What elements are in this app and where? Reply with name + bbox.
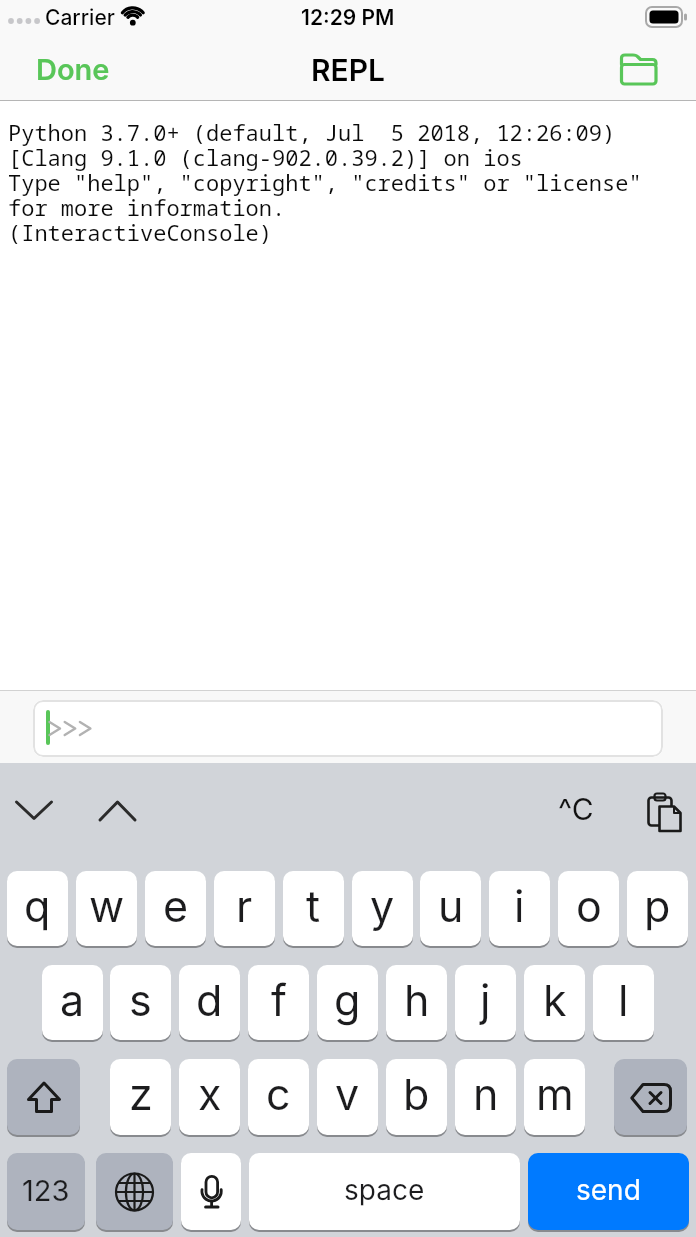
staticText: b: [403, 1068, 430, 1120]
button[interactable]: [96, 1153, 173, 1230]
button[interactable]: c: [248, 1059, 309, 1135]
staticText: z: [129, 1068, 153, 1120]
staticText: w: [89, 880, 125, 932]
button[interactable]: k: [524, 965, 585, 1040]
button[interactable]: send: [528, 1153, 689, 1230]
button[interactable]: f: [248, 965, 309, 1040]
button[interactable]: [92, 790, 144, 830]
button[interactable]: h: [386, 965, 447, 1040]
staticText: e: [163, 880, 189, 932]
button[interactable]: space: [249, 1153, 520, 1230]
staticText: a: [60, 974, 85, 1026]
button[interactable]: [614, 1059, 687, 1135]
staticText: m: [536, 1068, 574, 1120]
staticText: u: [438, 880, 464, 932]
staticText: 12:29 PM: [301, 5, 395, 30]
button[interactable]: v: [317, 1059, 378, 1135]
button[interactable]: p: [627, 871, 688, 946]
button[interactable]: o: [558, 871, 619, 946]
staticText: r: [236, 880, 253, 932]
staticText: Carrier: [45, 5, 115, 30]
staticText: REPL: [311, 52, 386, 88]
button[interactable]: e: [145, 871, 206, 946]
staticText: h: [404, 974, 430, 1026]
staticText: 123: [22, 1173, 70, 1208]
button[interactable]: 123: [7, 1153, 85, 1230]
staticText: k: [543, 974, 567, 1026]
button[interactable]: u: [420, 871, 481, 946]
staticText: c: [266, 1068, 291, 1120]
button[interactable]: [7, 1059, 80, 1135]
staticText: t: [306, 880, 321, 932]
button[interactable]: n: [455, 1059, 516, 1135]
button[interactable]: a: [42, 965, 103, 1040]
button[interactable]: t: [283, 871, 344, 946]
button[interactable]: m: [524, 1059, 585, 1135]
button[interactable]: [8, 790, 60, 830]
staticText: l: [618, 974, 629, 1026]
staticText: q: [24, 880, 51, 932]
staticText: x: [198, 1068, 222, 1120]
button[interactable]: z: [110, 1059, 171, 1135]
staticText: send: [576, 1173, 641, 1207]
staticText: s: [129, 974, 152, 1026]
staticText: d: [196, 974, 223, 1026]
staticText: Python 3.7.0+ (default, Jul 5 2018, 12:2…: [8, 117, 642, 247]
button[interactable]: [612, 48, 666, 94]
button[interactable]: [33, 700, 663, 757]
staticText: y: [370, 880, 395, 932]
staticText: Done: [36, 52, 110, 87]
button[interactable]: b: [386, 1059, 447, 1135]
staticText: o: [576, 880, 602, 932]
button[interactable]: y: [352, 871, 413, 946]
staticText: ^C: [558, 791, 594, 827]
button[interactable]: s: [110, 965, 171, 1040]
button[interactable]: [181, 1153, 241, 1230]
button[interactable]: l: [593, 965, 654, 1040]
staticText: f: [271, 974, 287, 1026]
button[interactable]: j: [455, 965, 516, 1040]
staticText: j: [480, 974, 491, 1026]
button[interactable]: [550, 788, 602, 832]
button[interactable]: i: [489, 871, 550, 946]
staticText: v: [335, 1068, 360, 1120]
staticText: p: [644, 880, 671, 932]
button[interactable]: w: [76, 871, 137, 946]
button[interactable]: q: [7, 871, 68, 946]
staticText: space: [344, 1173, 425, 1207]
button[interactable]: x: [179, 1059, 240, 1135]
staticText: n: [473, 1068, 499, 1120]
staticText: i: [514, 880, 525, 932]
button[interactable]: r: [214, 871, 275, 946]
button[interactable]: Done: [36, 52, 110, 87]
button[interactable]: d: [179, 965, 240, 1040]
button[interactable]: g: [317, 965, 378, 1040]
staticText: g: [334, 974, 361, 1026]
button[interactable]: [640, 788, 688, 836]
